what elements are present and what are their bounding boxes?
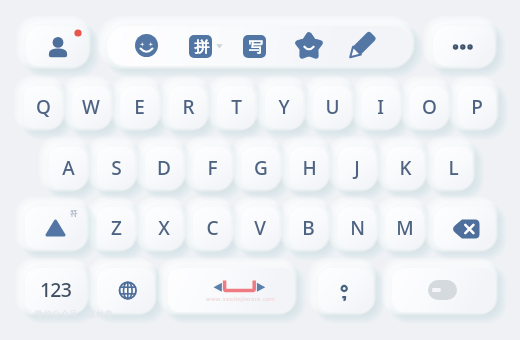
button[interactable]: N <box>338 207 376 249</box>
staticText: 拼 <box>194 38 209 56</box>
button[interactable]: H <box>290 147 328 189</box>
button[interactable]: C <box>193 207 231 249</box>
button[interactable]: Account <box>26 26 88 66</box>
staticText: S <box>111 155 122 181</box>
staticText: N <box>350 215 365 241</box>
button[interactable]: Space <box>168 268 294 312</box>
button[interactable]: Emoji <box>137 35 160 58</box>
button[interactable]: Enter <box>392 268 495 312</box>
staticText: Z <box>111 215 122 241</box>
staticText: V <box>254 215 266 241</box>
button[interactable]: Switch language <box>97 268 154 312</box>
button[interactable]: Comma <box>318 268 373 312</box>
button[interactable]: I <box>361 86 399 128</box>
button[interactable]: Y <box>265 86 303 128</box>
staticText: P <box>471 94 483 120</box>
button[interactable]: V <box>241 207 279 249</box>
staticText: 写 <box>248 38 263 56</box>
staticText: G <box>254 155 268 181</box>
button[interactable]: Shift <box>25 207 86 249</box>
staticText: M <box>396 215 414 241</box>
staticText: 123 <box>40 276 71 303</box>
staticText: K <box>399 155 412 181</box>
staticText: J <box>354 155 360 181</box>
button[interactable]: G <box>242 147 280 189</box>
button[interactable]: E <box>120 86 158 128</box>
button[interactable]: Backspace <box>434 207 495 249</box>
staticText: O <box>422 94 437 120</box>
staticText: E <box>134 94 145 120</box>
staticText: R <box>182 94 195 120</box>
button[interactable]: A <box>49 147 87 189</box>
staticText: Q <box>36 94 51 120</box>
staticText: D <box>157 155 171 181</box>
button[interactable]: L <box>434 147 472 189</box>
staticText: W <box>82 94 100 120</box>
staticText: A <box>62 155 75 181</box>
staticText: Y <box>278 94 290 120</box>
button[interactable]: U <box>313 86 351 128</box>
button[interactable]: P <box>458 86 496 128</box>
staticText: 微信公众号：森林集 <box>34 309 114 320</box>
button[interactable]: D <box>145 147 183 189</box>
button[interactable]: Numbers <box>25 268 86 312</box>
button[interactable]: W <box>72 86 110 128</box>
staticText: I <box>377 94 384 120</box>
button[interactable]: B <box>289 207 327 249</box>
staticText: www.seolinjimare.com <box>206 295 276 302</box>
button[interactable]: S <box>97 147 135 189</box>
button[interactable]: More options <box>433 26 494 66</box>
staticText: F <box>207 155 218 181</box>
button[interactable]: R <box>169 86 207 128</box>
button[interactable]: Pinyin input <box>189 35 223 58</box>
button[interactable]: Handwriting input <box>243 35 266 58</box>
button[interactable]: O <box>410 86 448 128</box>
button[interactable]: Z <box>97 207 135 249</box>
staticText: X <box>158 215 170 241</box>
button[interactable]: K <box>386 147 424 189</box>
button[interactable]: Draw <box>349 35 372 58</box>
button[interactable]: F <box>193 147 231 189</box>
button[interactable]: Q <box>24 86 62 128</box>
button[interactable]: X <box>145 207 183 249</box>
button[interactable]: M <box>386 207 424 249</box>
staticText: C <box>206 215 219 241</box>
staticText: B <box>302 215 315 241</box>
button[interactable]: T <box>217 86 255 128</box>
button[interactable]: J <box>338 147 376 189</box>
staticText: L <box>448 155 459 181</box>
staticText: H <box>302 155 317 181</box>
staticText: T <box>231 94 242 120</box>
button[interactable]: Favorites <box>297 35 320 58</box>
staticText: 符 <box>70 209 78 218</box>
staticText: U <box>325 94 340 120</box>
